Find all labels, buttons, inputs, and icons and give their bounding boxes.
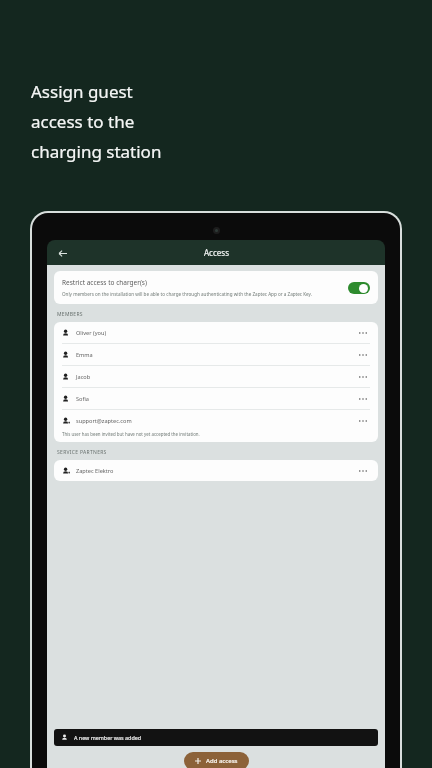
staticText: Restrict access to charger(s) [62,278,147,287]
button[interactable]: More options [356,370,370,384]
staticText: Access [204,247,229,258]
button[interactable]: Emma [54,344,378,365]
staticText: Assign guest [31,80,133,103]
staticText: Sofia [76,395,89,403]
button[interactable]: A new member was added [54,729,378,746]
button[interactable]: More options [356,326,370,340]
button[interactable]: support@zaptec.com [54,410,378,442]
staticText: charging station [31,140,162,163]
button[interactable]: Oliver (you) [54,322,378,343]
staticText: MEMBERS [57,311,83,318]
staticText: support@zaptec.com [76,417,132,425]
staticText: SERVICE PARTNERS [57,449,107,456]
staticText: access to the [31,110,135,133]
staticText: Jacob [76,373,91,381]
button[interactable]: More options [356,414,370,428]
staticText: A new member was added [74,734,142,741]
staticText: Only members on the installation will be… [62,291,312,297]
button[interactable]: Add access [184,752,249,768]
staticText: Zaptec Elektro [76,467,114,475]
staticText: Oliver (you) [76,329,107,337]
button[interactable]: More options [356,392,370,406]
button[interactable]: Restrict access toggle [348,282,370,294]
staticText: Emma [76,351,93,359]
button[interactable]: More options [356,464,370,478]
button[interactable]: More options [356,348,370,362]
button[interactable]: Zaptec Elektro [54,460,378,481]
staticText: Add access [206,757,238,765]
button[interactable]: Back [53,244,71,262]
button[interactable]: Sofia [54,388,378,409]
staticText: This user has been invited but have not … [62,431,200,437]
button[interactable]: Restrict access to charger(s) [54,271,378,304]
button[interactable]: Jacob [54,366,378,387]
